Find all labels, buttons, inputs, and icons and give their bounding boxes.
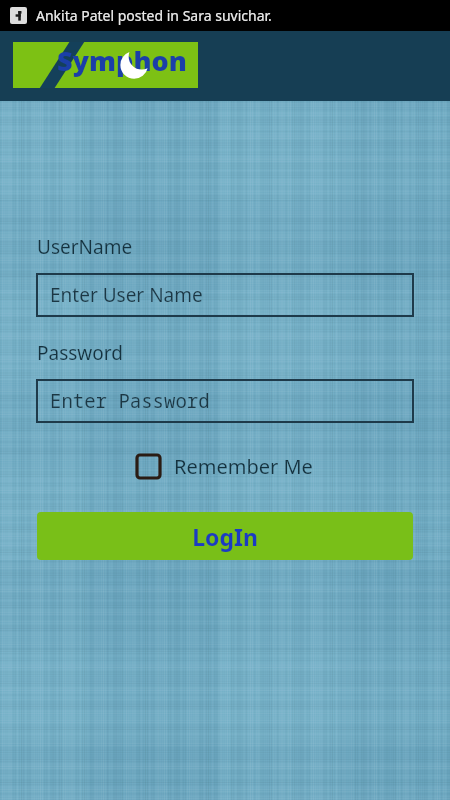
button[interactable]: Symphony home: [13, 42, 198, 88]
staticText: Enter Password: [50, 388, 210, 414]
staticText: Enter User Name: [50, 282, 203, 308]
staticText: UserName: [37, 234, 133, 260]
button[interactable]: Enter Password: [37, 380, 413, 422]
staticText: Password: [37, 340, 123, 366]
button[interactable]: Ankita Patel posted in Sara suvichar.: [0, 0, 450, 31]
button[interactable]: Enter User Name: [37, 274, 413, 316]
button[interactable]: Remember Me: [137, 453, 313, 480]
staticText: Remember Me: [174, 453, 313, 480]
button[interactable]: LogIn: [37, 512, 413, 560]
staticText: Ankita Patel posted in Sara suvichar.: [36, 6, 272, 25]
staticText: Symphony: [57, 42, 198, 88]
staticText: LogIn: [192, 521, 258, 552]
